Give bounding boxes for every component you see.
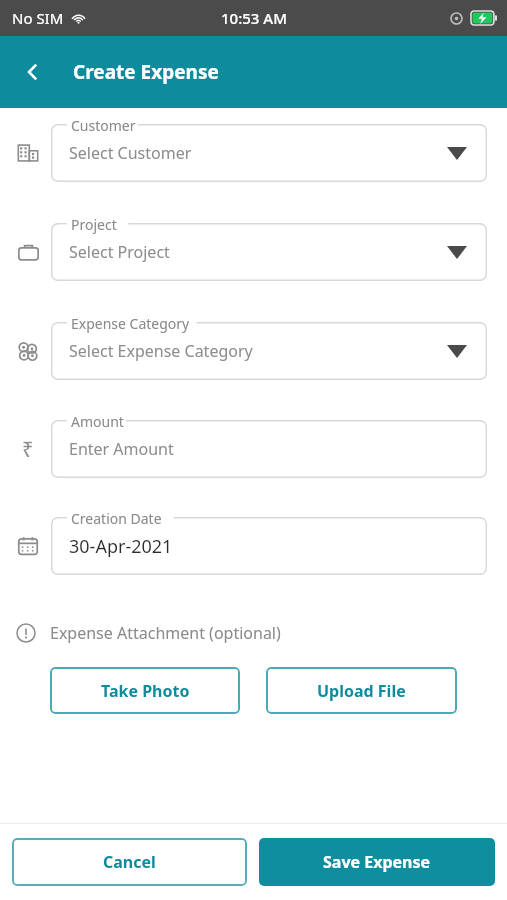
staticText: Save Expense: [323, 851, 431, 873]
staticText: ₹: [22, 436, 34, 463]
staticText: Creation Date: [71, 509, 162, 528]
staticText: Project: [71, 215, 117, 234]
staticText: Select Expense Category: [69, 340, 253, 362]
button[interactable]: Upload File: [266, 667, 457, 714]
staticText: Customer: [71, 116, 136, 135]
button[interactable]: Creation Date: [51, 517, 487, 575]
staticText: Upload File: [317, 680, 406, 702]
button[interactable]: Save Expense: [259, 838, 495, 886]
staticText: Amount: [71, 412, 124, 431]
button[interactable]: Cancel: [12, 838, 247, 886]
staticText: Select Project: [69, 241, 170, 263]
staticText: Create Expense: [73, 59, 219, 85]
staticText: Enter Amount: [69, 438, 174, 460]
button[interactable]: Expense Category: [51, 322, 487, 380]
staticText: No SIM: [12, 8, 64, 28]
staticText: Expense Category: [71, 314, 190, 333]
staticText: Take Photo: [101, 680, 190, 702]
button[interactable]: Back: [12, 51, 54, 93]
button[interactable]: Amount: [51, 420, 487, 478]
staticText: Expense Attachment (optional): [50, 622, 281, 644]
button[interactable]: Take Photo: [50, 667, 240, 714]
staticText: 10:53 AM: [221, 8, 287, 28]
button[interactable]: Project: [51, 223, 487, 281]
staticText: Select Customer: [69, 142, 192, 164]
staticText: Cancel: [103, 851, 156, 873]
button[interactable]: Customer: [51, 124, 487, 182]
staticText: 30-Apr-2021: [69, 534, 173, 559]
